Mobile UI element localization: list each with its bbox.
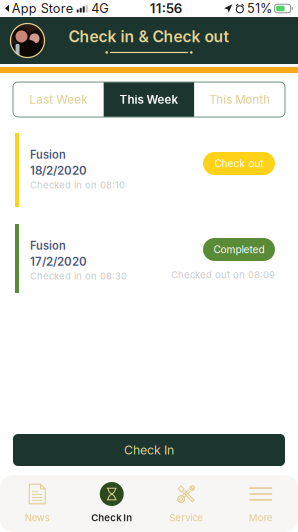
- button[interactable]: Service: [149, 475, 223, 532]
- staticText: Check In: [124, 443, 174, 457]
- button[interactable]: Check out: [203, 152, 275, 175]
- staticText: News: [25, 512, 50, 524]
- staticText: Checked in on 08:30: [30, 270, 127, 282]
- staticText: Completed: [213, 243, 264, 256]
- staticText: Check In: [91, 512, 132, 524]
- button[interactable]: Last Week: [13, 82, 104, 117]
- staticText: More: [249, 512, 273, 524]
- staticText: 51%: [247, 1, 272, 16]
- staticText: 18/2/2020: [30, 163, 87, 177]
- staticText: Check in & Check out: [68, 27, 229, 46]
- staticText: 11:56: [150, 0, 183, 16]
- staticText: Checked in on 08:10: [30, 179, 125, 191]
- staticText: Service: [169, 512, 203, 524]
- button[interactable]: This Month: [194, 82, 285, 117]
- staticText: 17/2/2020: [30, 254, 87, 268]
- staticText: Last Week: [29, 92, 87, 106]
- button[interactable]: Check In: [13, 434, 285, 466]
- staticText: App Store: [12, 1, 73, 16]
- button[interactable]: News: [0, 475, 74, 532]
- staticText: Fusion: [30, 148, 66, 161]
- staticText: This Week: [119, 92, 178, 106]
- staticText: 4G: [91, 1, 108, 16]
- staticText: This Month: [209, 92, 270, 106]
- button[interactable]: This Week: [104, 82, 194, 117]
- button[interactable]: Completed: [203, 238, 275, 261]
- staticText: Fusion: [30, 239, 66, 252]
- button[interactable]: Check In: [74, 475, 149, 532]
- staticText: Check out: [214, 157, 263, 170]
- button[interactable]: More: [223, 475, 298, 532]
- staticText: Checked out on 08:09: [171, 269, 275, 280]
